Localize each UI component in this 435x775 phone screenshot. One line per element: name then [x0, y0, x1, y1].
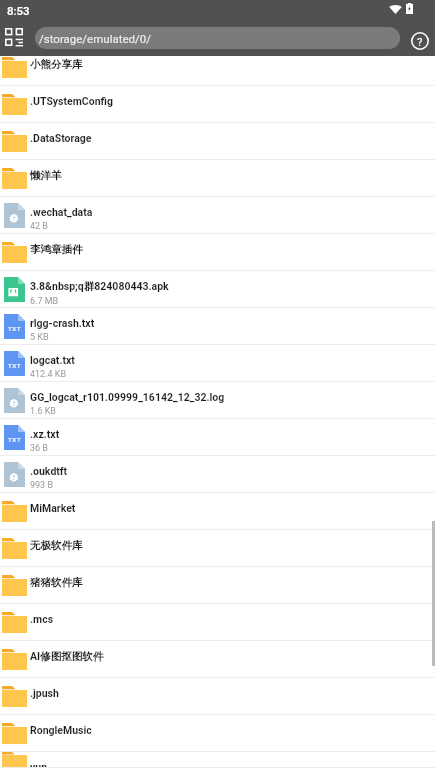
button[interactable]: .jpush [0, 678, 435, 715]
staticText: yun [30, 761, 48, 768]
button[interactable]: 3.8&nbsp;q群824080443.apk [0, 271, 435, 308]
staticText: 3.8&nbsp;q群824080443.apk [30, 280, 169, 293]
staticText: .oukdtft [30, 465, 68, 477]
staticText: TXT [8, 325, 22, 332]
button[interactable]: 无极软件库 [0, 530, 435, 567]
staticText: .UTSystemConfig [30, 95, 113, 107]
staticText: 李鸿章插件 [30, 243, 83, 256]
button[interactable]: 小熊分享库 [0, 56, 435, 86]
staticText: 无极软件库 [30, 539, 83, 552]
staticText: 8:53 [7, 4, 30, 17]
staticText: 懒洋羊 [30, 169, 62, 182]
staticText: AI修图抠图软件 [30, 650, 104, 663]
button[interactable]: MiMarket [0, 493, 435, 530]
staticText: TXT [8, 436, 22, 443]
button[interactable]: TXT [0, 308, 435, 345]
staticText: TXT [8, 362, 22, 369]
staticText: .mcs [30, 613, 54, 625]
button[interactable]: RongleMusic [0, 715, 435, 752]
staticText: RongleMusic [30, 724, 92, 736]
staticText: GG_logcat_r101.09999_16142_12_32.log [30, 391, 225, 403]
button[interactable]: TXT [0, 345, 435, 382]
button[interactable]: 李鸿章插件 [0, 234, 435, 271]
staticText: .wechat_data [30, 206, 93, 218]
staticText: 1.6 KB [30, 406, 56, 417]
button[interactable]: Help [404, 26, 435, 56]
staticText: rlgg-crash.txt [30, 317, 95, 329]
staticText: .DataStorage [30, 132, 92, 144]
staticText: /storage/emulated/0/ [39, 32, 151, 45]
staticText: .xz.txt [30, 428, 60, 440]
button[interactable]: Change view mode [0, 26, 32, 56]
staticText: .jpush [30, 687, 59, 699]
button[interactable]: .oukdtft [0, 456, 435, 493]
staticText: logcat.txt [30, 354, 75, 366]
button[interactable]: TXT [0, 419, 435, 456]
button[interactable]: GG_logcat_r101.09999_16142_12_32.log [0, 382, 435, 419]
button[interactable]: .mcs [0, 604, 435, 641]
button[interactable]: yun [0, 752, 435, 768]
button[interactable]: .UTSystemConfig [0, 86, 435, 123]
button[interactable]: AI修图抠图软件 [0, 641, 435, 678]
staticText: 5 KB [30, 332, 49, 343]
staticText: 猪猪软件库 [30, 576, 83, 589]
button[interactable]: /storage/emulated/0/ [35, 27, 400, 49]
button[interactable]: 懒洋羊 [0, 160, 435, 197]
staticText: 993 B [30, 480, 54, 491]
staticText: 412.4 KB [30, 369, 67, 380]
staticText: 小熊分享库 [30, 58, 83, 71]
staticText: ? [417, 35, 423, 48]
button[interactable]: .DataStorage [0, 123, 435, 160]
staticText: 6.7 MB [30, 296, 59, 307]
button[interactable]: .wechat_data [0, 197, 435, 234]
staticText: MiMarket [30, 502, 76, 514]
staticText: 42 B [30, 221, 48, 232]
staticText: 36 B [30, 443, 48, 454]
button[interactable]: 猪猪软件库 [0, 567, 435, 604]
